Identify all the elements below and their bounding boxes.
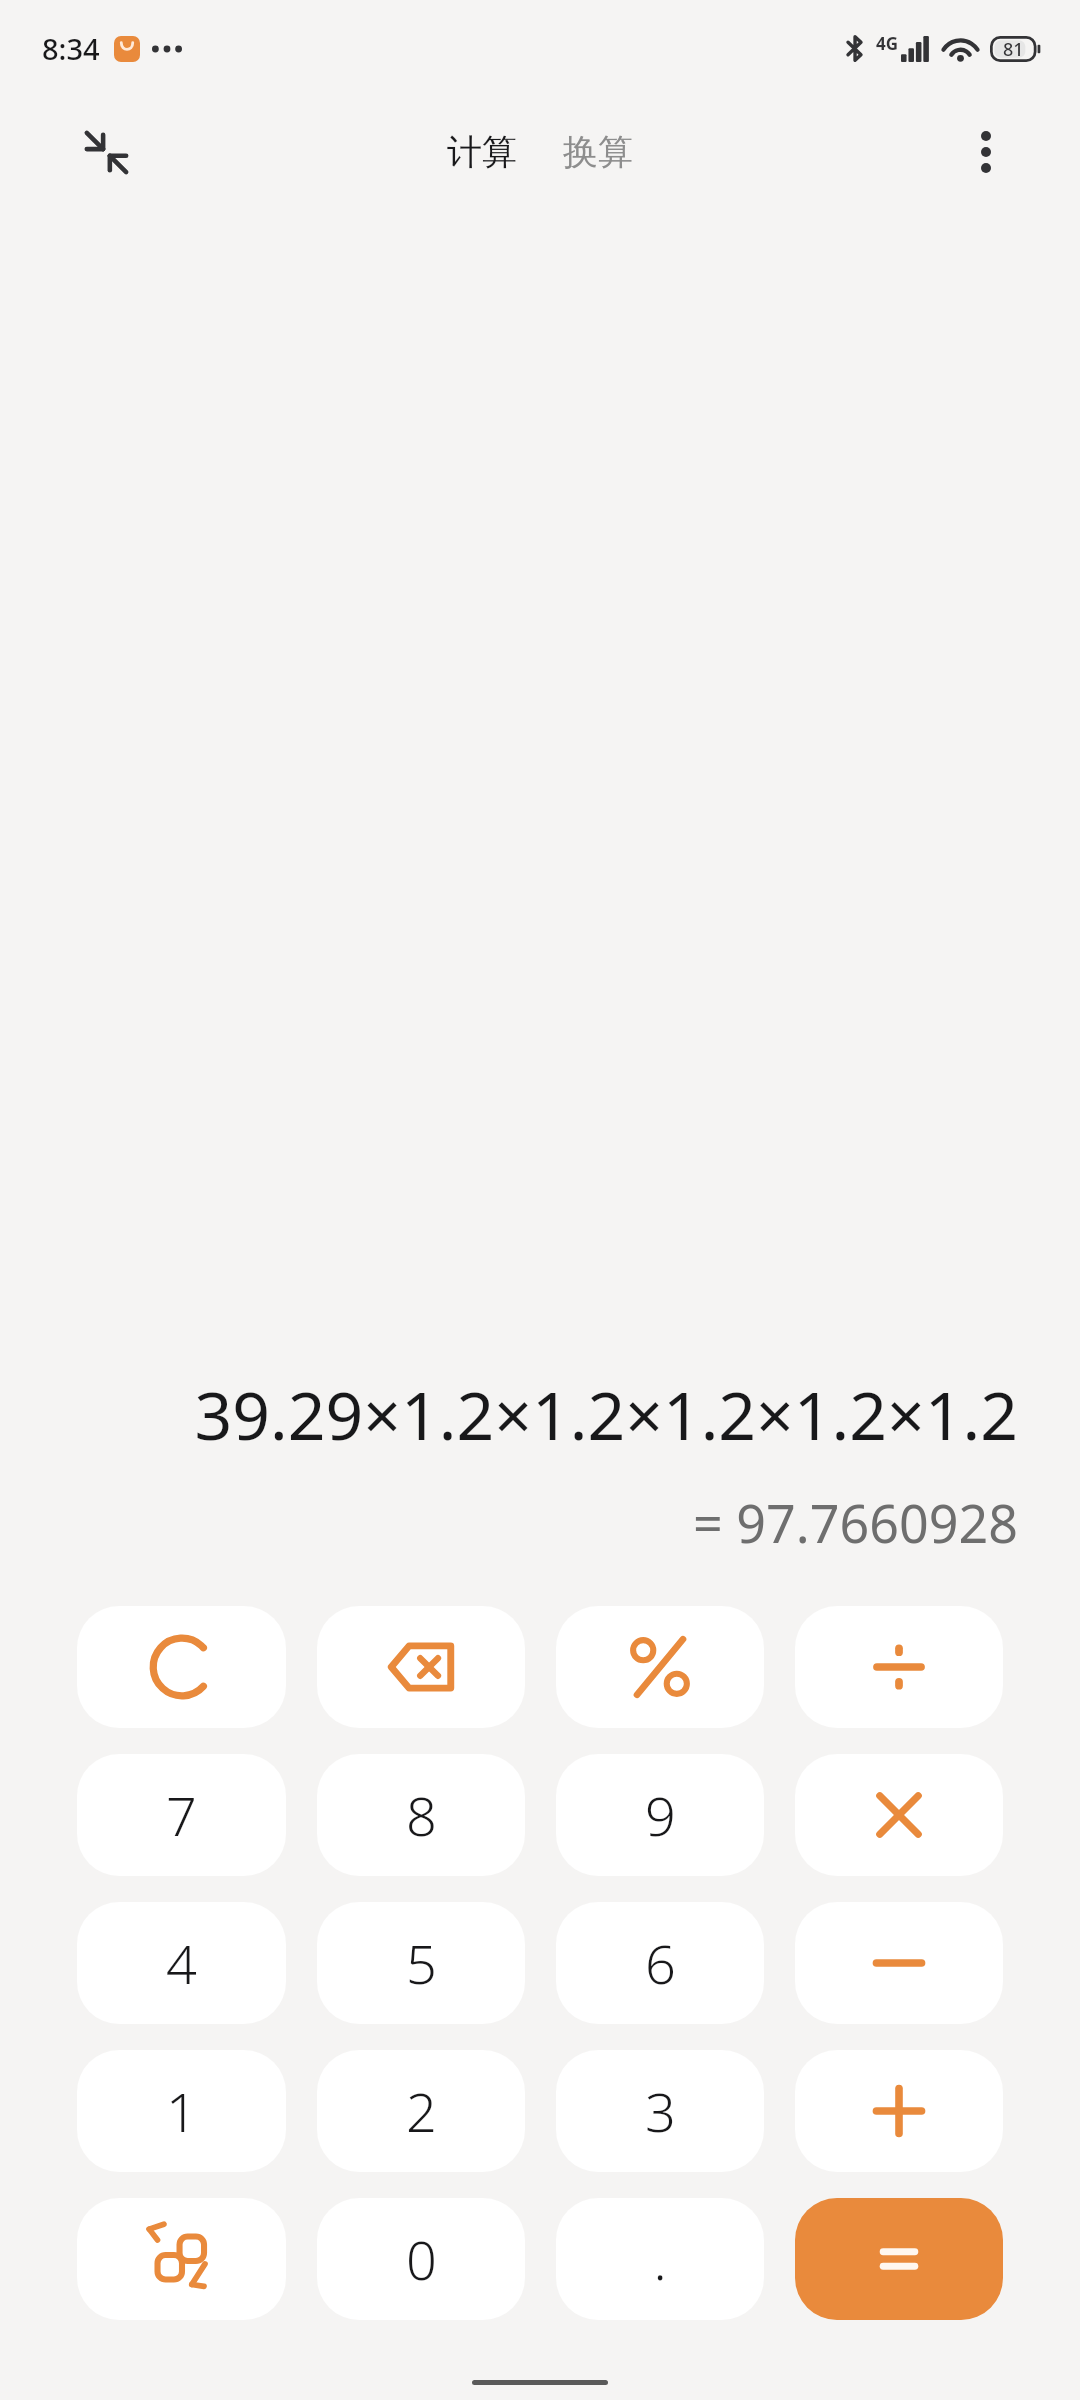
button[interactable]: 5: [317, 1902, 525, 2024]
button[interactable]: 6: [556, 1902, 764, 2024]
staticText: 4: [166, 1926, 197, 2000]
button[interactable]: Equals: [795, 2198, 1003, 2320]
button[interactable]: Plus: [795, 2050, 1003, 2172]
button[interactable]: 2: [317, 2050, 525, 2172]
button[interactable]: Percent: [556, 1606, 764, 1728]
staticText: 81: [1003, 37, 1024, 62]
staticText: 3: [645, 2074, 676, 2148]
staticText: 换算: [563, 130, 633, 174]
staticText: = 97.7660928: [60, 1487, 1018, 1558]
button[interactable]: Minus: [795, 1902, 1003, 2024]
staticText: 9: [645, 1778, 676, 1852]
button[interactable]: 换算: [553, 122, 643, 182]
button[interactable]: More options: [948, 114, 1024, 190]
button[interactable]: Divide: [795, 1606, 1003, 1728]
staticText: 2: [406, 2074, 437, 2148]
button[interactable]: 1: [77, 2050, 286, 2172]
button[interactable]: 3: [556, 2050, 764, 2172]
button[interactable]: Clear: [77, 1606, 286, 1728]
staticText: 4G: [876, 32, 899, 55]
staticText: 39.29×1.2×1.2×1.2×1.2×1.2: [60, 1369, 1018, 1459]
button[interactable]: Backspace: [317, 1606, 525, 1728]
staticText: 8: [406, 1778, 437, 1852]
button[interactable]: 4: [77, 1902, 286, 2024]
button[interactable]: Collapse: [68, 114, 144, 190]
button[interactable]: Multiply: [795, 1754, 1003, 1876]
button[interactable]: .: [556, 2198, 764, 2320]
button[interactable]: 8: [317, 1754, 525, 1876]
staticText: 1: [166, 2074, 197, 2148]
button[interactable]: 7: [77, 1754, 286, 1876]
button[interactable]: 计算: [437, 122, 527, 182]
button[interactable]: 9: [556, 1754, 764, 1876]
staticText: 0: [406, 2222, 437, 2296]
staticText: 5: [406, 1926, 437, 2000]
staticText: 计算: [447, 130, 517, 174]
button[interactable]: Scientific: [77, 2198, 286, 2320]
staticText: 8:34: [42, 29, 100, 68]
staticText: 6: [645, 1926, 676, 2000]
staticText: 7: [166, 1778, 197, 1852]
button[interactable]: 0: [317, 2198, 525, 2320]
staticText: .: [653, 2222, 667, 2296]
